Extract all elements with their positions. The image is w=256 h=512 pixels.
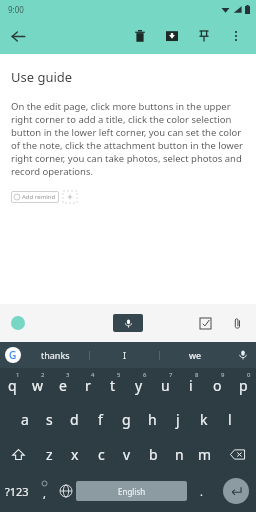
staticText: p (239, 376, 248, 395)
staticText: 1 (16, 371, 20, 379)
staticText: 8 (195, 371, 199, 379)
staticText: . (200, 484, 203, 499)
button[interactable]: s (37, 402, 62, 436)
staticText: z (46, 445, 53, 464)
button[interactable]: l (217, 402, 243, 436)
staticText: we (189, 349, 202, 361)
button[interactable]: w (25, 368, 50, 402)
button[interactable]: Google (5, 347, 21, 363)
button[interactable]: Checklist (196, 314, 214, 332)
staticText: x (71, 445, 79, 464)
button[interactable]: Backspace (218, 436, 256, 472)
button[interactable]: p (230, 368, 256, 402)
button[interactable]: r (75, 368, 100, 402)
button[interactable]: z (37, 436, 62, 472)
staticText: m (198, 445, 212, 464)
staticText: 3 (66, 371, 70, 379)
staticText: c (98, 445, 105, 464)
staticText: G (9, 348, 17, 362)
staticText: English (118, 486, 146, 497)
staticText: v (123, 445, 131, 464)
button[interactable]: k (191, 402, 217, 436)
button[interactable]: y (126, 368, 152, 402)
staticText: I (123, 349, 127, 361)
button[interactable]: ?123 (0, 472, 34, 510)
staticText: b (149, 445, 158, 464)
button[interactable]: thanks (21, 342, 90, 368)
staticText: y (135, 376, 143, 395)
staticText: Add remind (22, 193, 56, 201)
staticText: ?123 (5, 484, 29, 499)
staticText: k (200, 410, 208, 429)
button[interactable]: f (87, 402, 113, 436)
staticText: r (85, 376, 91, 395)
button[interactable]: c (88, 436, 114, 472)
button[interactable]: m (192, 436, 218, 472)
button[interactable]: Change language (55, 472, 76, 510)
staticText: 9 (221, 371, 225, 379)
button[interactable]: g (113, 402, 139, 436)
button[interactable]: Pin (188, 20, 220, 52)
staticText: e (59, 376, 67, 395)
button[interactable]: English (76, 481, 187, 501)
button[interactable]: Enter (223, 478, 249, 504)
button[interactable]: a (12, 402, 37, 436)
button[interactable]: q (0, 368, 25, 402)
button[interactable]: Save (156, 20, 188, 52)
staticText: n (175, 445, 184, 464)
button[interactable]: Note color (11, 316, 25, 330)
button[interactable]: Emoji and comma (34, 472, 55, 510)
staticText: d (70, 410, 79, 429)
button[interactable]: o (204, 368, 230, 402)
staticText: Use guide (11, 68, 73, 86)
staticText: 7 (169, 371, 173, 379)
staticText: t (110, 376, 116, 395)
button[interactable]: I (90, 342, 160, 368)
button[interactable]: v (114, 436, 140, 472)
staticText: q (8, 376, 17, 395)
staticText: On the edit page, click more buttons in … (11, 100, 245, 178)
staticText: thanks (41, 349, 70, 361)
staticText: g (122, 410, 131, 429)
button[interactable]: x (62, 436, 88, 472)
button[interactable]: u (152, 368, 178, 402)
button[interactable]: Delete (124, 20, 156, 52)
button[interactable]: i (178, 368, 204, 402)
staticText: s (46, 410, 53, 429)
button[interactable]: we (160, 342, 230, 368)
staticText: 6 (143, 371, 147, 379)
button[interactable]: n (166, 436, 192, 472)
button[interactable]: b (140, 436, 166, 472)
staticText: i (189, 376, 193, 395)
button[interactable]: . (187, 472, 215, 510)
staticText: w (32, 376, 44, 395)
button[interactable]: e (50, 368, 75, 402)
staticText: , (43, 486, 46, 501)
staticText: 4 (91, 371, 95, 379)
button[interactable]: Add (63, 191, 77, 203)
button[interactable]: Attach file (228, 314, 246, 332)
staticText: u (161, 376, 170, 395)
button[interactable]: Add remind (11, 191, 59, 203)
button[interactable]: j (165, 402, 191, 436)
staticText: 0 (247, 371, 251, 379)
staticText: a (21, 410, 29, 429)
staticText: h (148, 410, 157, 429)
staticText: f (98, 410, 103, 429)
staticText: 2 (41, 371, 45, 379)
staticText: o (213, 376, 222, 395)
staticText: 9:00 (8, 4, 24, 15)
button[interactable]: Voice typing (230, 342, 256, 368)
button[interactable]: Shift (0, 436, 37, 472)
button[interactable]: More options (220, 20, 252, 52)
button[interactable]: Back (0, 18, 36, 54)
button[interactable]: d (62, 402, 87, 436)
button[interactable]: Voice input (113, 314, 143, 332)
staticText: l (228, 410, 232, 429)
staticText: j (176, 410, 180, 429)
button[interactable]: h (139, 402, 165, 436)
staticText: 5 (117, 371, 121, 379)
button[interactable]: t (100, 368, 126, 402)
